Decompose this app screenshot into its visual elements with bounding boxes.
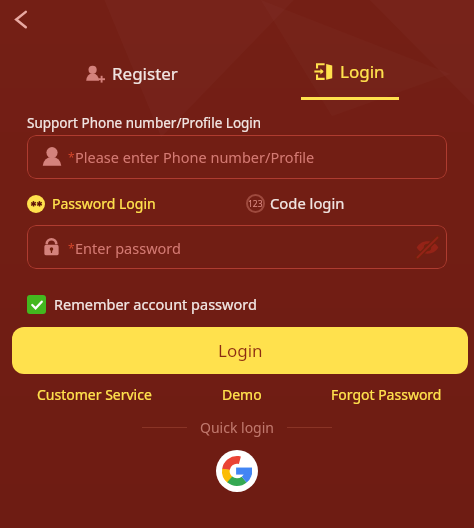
staticText: Please enter Phone number/Profile [75, 147, 315, 167]
button[interactable]: Customer Service [37, 385, 152, 404]
button[interactable]: Login [12, 327, 468, 374]
staticText: 123 [248, 198, 263, 210]
button[interactable]: * [27, 135, 447, 179]
staticText: Remember account password [54, 294, 257, 314]
staticText: Login [218, 339, 263, 362]
button[interactable]: Forgot Password [331, 385, 442, 404]
button[interactable]: Back [0, 0, 42, 42]
staticText: Enter password [75, 238, 181, 258]
staticText: * [68, 240, 75, 256]
staticText: Password Login [52, 194, 156, 213]
staticText: Login [340, 60, 385, 83]
button[interactable]: Remember account password [27, 294, 257, 314]
button[interactable]: Sign in with Google [216, 450, 258, 492]
button[interactable]: 123 [246, 193, 345, 213]
staticText: Quick login [200, 418, 274, 437]
button[interactable]: Register [0, 62, 262, 99]
staticText: Code login [270, 193, 345, 213]
staticText: Register [112, 62, 178, 85]
staticText: * [68, 149, 75, 165]
button[interactable]: Login [225, 60, 474, 100]
staticText: Support Phone number/Profile Login [27, 114, 262, 132]
button[interactable]: * [27, 225, 447, 269]
button[interactable]: Demo [222, 385, 262, 404]
button[interactable]: Password Login [27, 194, 156, 213]
button[interactable]: Show password [415, 235, 440, 260]
